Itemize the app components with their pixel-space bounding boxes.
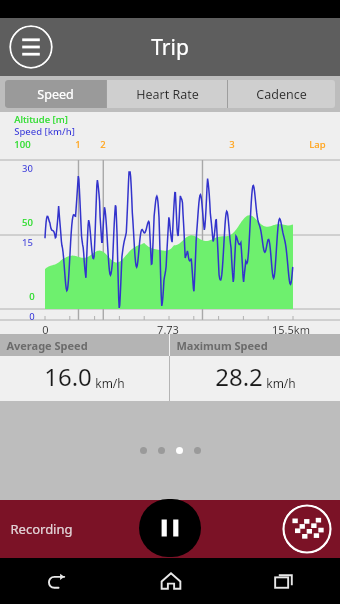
- button[interactable]: Menu: [9, 25, 53, 69]
- staticText: Trip: [151, 33, 189, 62]
- staticText: 0: [29, 290, 35, 303]
- staticText: 1: [75, 138, 81, 151]
- staticText: 2: [100, 138, 106, 151]
- button[interactable]: [140, 447, 147, 454]
- button[interactable]: Maximum Speed: [170, 334, 340, 356]
- staticText: Lap: [309, 138, 326, 151]
- staticText: 15: [22, 236, 33, 249]
- button[interactable]: Back: [0, 558, 114, 604]
- staticText: Speed: [37, 86, 74, 103]
- staticText: km/h: [266, 375, 296, 391]
- button[interactable]: Home: [114, 558, 227, 604]
- staticText: Cadence: [256, 86, 307, 103]
- button[interactable]: [158, 447, 165, 454]
- button[interactable]: Finish: [282, 504, 332, 554]
- button[interactable]: Speed: [5, 80, 106, 108]
- staticText: 50: [22, 216, 33, 229]
- staticText: 100: [14, 138, 31, 151]
- staticText: 16.0: [44, 360, 92, 393]
- button[interactable]: [176, 447, 183, 454]
- button[interactable]: Heart Rate: [107, 80, 227, 108]
- staticText: 30: [22, 162, 33, 175]
- staticText: Speed [km/h]: [14, 125, 75, 138]
- staticText: Recording: [10, 520, 73, 538]
- button[interactable]: 16.0: [0, 356, 169, 401]
- staticText: 0: [42, 322, 49, 337]
- staticText: Altitude [m]: [14, 113, 68, 126]
- button[interactable]: Average Speed: [0, 334, 169, 356]
- staticText: Heart Rate: [136, 86, 199, 103]
- staticText: 28.2: [215, 360, 263, 393]
- button[interactable]: Pause: [139, 499, 201, 557]
- staticText: 7.73: [157, 322, 179, 337]
- button[interactable]: Cadence: [228, 80, 335, 108]
- staticText: 15.5km: [272, 322, 310, 337]
- staticText: km/h: [95, 375, 125, 391]
- button[interactable]: 28.2: [170, 356, 340, 401]
- button[interactable]: Recents: [227, 558, 340, 604]
- staticText: Average Speed: [6, 338, 88, 353]
- staticText: 0: [29, 310, 35, 323]
- button[interactable]: [194, 447, 201, 454]
- staticText: Maximum Speed: [176, 338, 268, 353]
- staticText: 3: [229, 138, 235, 151]
